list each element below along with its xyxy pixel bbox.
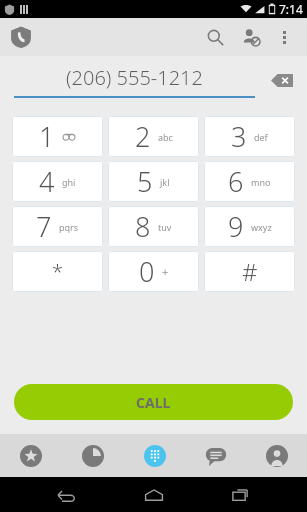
button[interactable]: Recents bbox=[62, 434, 124, 477]
staticText: 0 bbox=[139, 253, 155, 290]
staticText: abc bbox=[158, 131, 173, 143]
staticText: # bbox=[242, 255, 258, 288]
button[interactable]: Recent apps bbox=[219, 477, 263, 512]
button[interactable]: 0 bbox=[108, 251, 199, 292]
button[interactable]: * bbox=[12, 251, 103, 292]
button[interactable]: Home bbox=[132, 477, 176, 512]
button[interactable]: 6 bbox=[204, 161, 295, 202]
staticText: (206) 555-1212 bbox=[14, 64, 255, 91]
button[interactable]: Search bbox=[197, 19, 233, 55]
staticText: jkl bbox=[160, 176, 170, 188]
button[interactable]: Contacts bbox=[246, 434, 307, 477]
staticText: 7 bbox=[36, 208, 52, 245]
staticText: pqrs bbox=[59, 221, 79, 233]
staticText: def bbox=[254, 131, 268, 143]
button[interactable]: CALL bbox=[14, 384, 293, 420]
staticText: + bbox=[162, 264, 169, 279]
button[interactable]: Favorites bbox=[0, 434, 62, 477]
button[interactable]: 3 bbox=[204, 116, 295, 157]
staticText: CALL bbox=[136, 393, 171, 412]
staticText: 8 bbox=[135, 208, 151, 245]
button[interactable]: 7 bbox=[12, 206, 103, 247]
staticText: wxyz bbox=[251, 221, 272, 233]
button[interactable]: # bbox=[204, 251, 295, 292]
staticText: 6 bbox=[228, 163, 244, 200]
staticText: mno bbox=[251, 176, 271, 188]
button[interactable]: 2 bbox=[108, 116, 199, 157]
button[interactable]: Dialpad bbox=[124, 434, 185, 477]
staticText: 9 bbox=[228, 208, 244, 245]
button[interactable]: 5 bbox=[108, 161, 199, 202]
staticText: ghi bbox=[62, 176, 76, 188]
staticText: tuv bbox=[158, 221, 172, 233]
button[interactable]: Messages bbox=[185, 434, 246, 477]
button[interactable]: 9 bbox=[204, 206, 295, 247]
staticText: 4 bbox=[39, 163, 55, 200]
button[interactable]: 1 bbox=[12, 116, 103, 157]
staticText: 2 bbox=[135, 118, 151, 155]
staticText: 3 bbox=[231, 118, 247, 155]
staticText: 7:14 bbox=[279, 1, 303, 17]
button[interactable]: Backspace bbox=[265, 63, 299, 97]
button[interactable]: 8 bbox=[108, 206, 199, 247]
staticText: 5 bbox=[137, 163, 153, 200]
staticText: 1 bbox=[39, 118, 55, 155]
button[interactable]: More options bbox=[269, 22, 299, 52]
button[interactable]: Block contact bbox=[233, 19, 269, 55]
button[interactable]: 4 bbox=[12, 161, 103, 202]
button[interactable]: Back bbox=[44, 477, 88, 512]
staticText: * bbox=[52, 258, 64, 285]
